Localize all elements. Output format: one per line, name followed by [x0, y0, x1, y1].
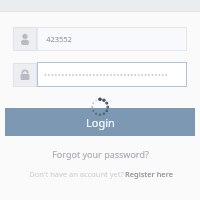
- button[interactable]: [13, 62, 187, 87]
- button[interactable]: 423552: [13, 27, 187, 51]
- staticText: Forgot your password?: [52, 148, 149, 160]
- staticText: Login: [86, 115, 115, 130]
- staticText: 423552: [46, 34, 72, 44]
- button[interactable]: Register here: [125, 169, 173, 179]
- staticText: Register here: [125, 169, 173, 179]
- button[interactable]: Login: [5, 108, 195, 136]
- button[interactable]: Forgot your password?: [0, 148, 200, 160]
- staticText: Don't have an account yet?: [28, 169, 125, 179]
